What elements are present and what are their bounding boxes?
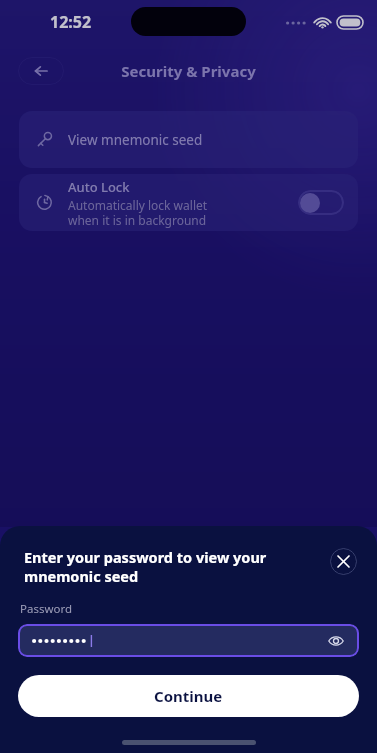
staticText: Password [20, 601, 73, 617]
button[interactable]: Show password [325, 630, 347, 652]
staticText: Automatically lock wallet when it is in … [68, 197, 208, 228]
staticText: 12:52 [50, 11, 92, 33]
staticText: Security & Privacy [121, 61, 256, 81]
button[interactable]: Show password [18, 624, 359, 657]
staticText: Continue [154, 686, 223, 706]
staticText: Enter your password to view your mnemoni… [24, 547, 330, 586]
button[interactable]: View mnemonic seed [19, 111, 358, 168]
staticText: View mnemonic seed [68, 131, 203, 149]
button[interactable]: Auto Lock [19, 174, 358, 231]
button[interactable]: Back [18, 57, 64, 85]
staticText: Auto Lock [68, 178, 130, 196]
button[interactable]: Close [330, 548, 357, 575]
button[interactable]: Auto Lock toggle [298, 190, 344, 215]
button[interactable]: Continue [18, 675, 359, 717]
